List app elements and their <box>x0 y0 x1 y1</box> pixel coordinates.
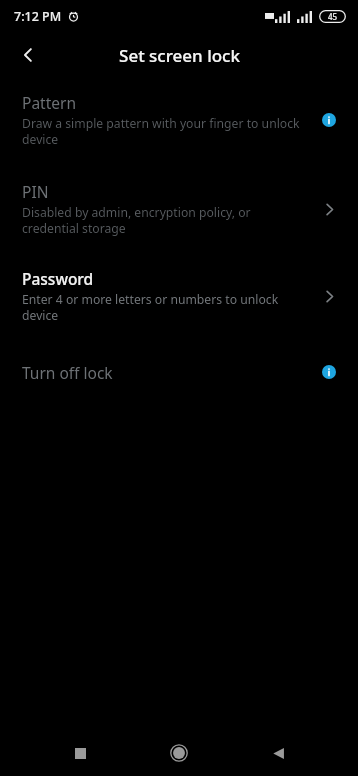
staticText: Pattern <box>22 92 76 113</box>
button[interactable]: Recents <box>60 733 100 773</box>
button[interactable]: More information <box>314 105 344 135</box>
staticText: PIN <box>22 181 49 202</box>
button[interactable]: More information <box>314 357 344 387</box>
staticText: Enter 4 or more letters or numbers to un… <box>22 291 302 323</box>
staticText: Turn off lock <box>22 362 113 383</box>
button[interactable]: Home <box>159 733 199 773</box>
button[interactable]: PIN <box>0 175 358 242</box>
staticText: Disabled by admin, encryption policy, or… <box>22 204 302 236</box>
staticText: 45 <box>328 11 338 22</box>
staticText: Password <box>22 268 94 289</box>
button[interactable]: Password <box>0 262 358 329</box>
staticText: 7:12 PM <box>14 8 62 25</box>
staticText: Set screen lock <box>119 44 240 67</box>
button[interactable]: Pattern <box>0 86 358 153</box>
button[interactable]: Back <box>258 733 298 773</box>
button[interactable]: Back <box>8 35 48 75</box>
staticText: Draw a simple pattern with your finger t… <box>22 115 302 147</box>
button[interactable]: Turn off lock <box>0 351 358 393</box>
